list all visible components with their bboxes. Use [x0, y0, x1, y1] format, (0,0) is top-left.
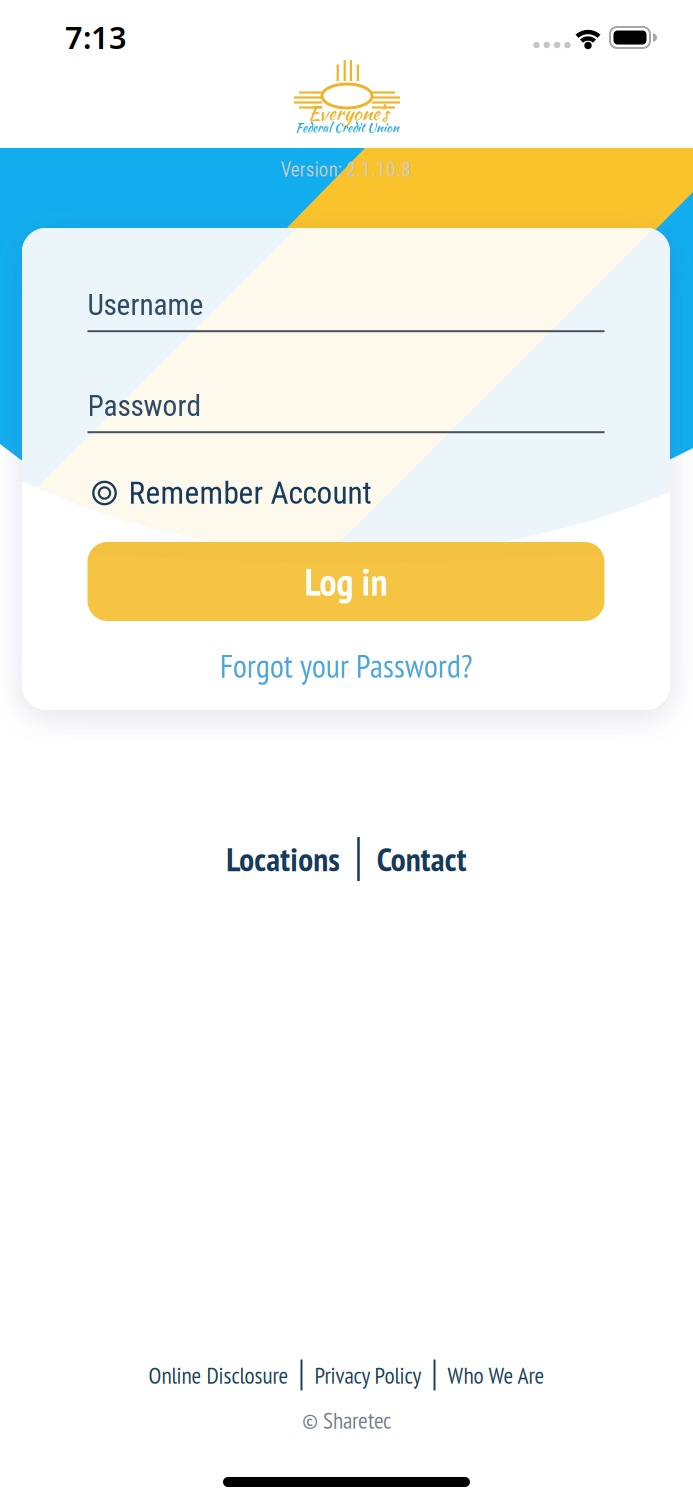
staticText: Version: 2.1.10.8: [280, 159, 411, 181]
button[interactable]: Contact: [377, 837, 467, 880]
staticText: Privacy Policy: [314, 1360, 421, 1390]
button[interactable]: Privacy Policy: [314, 1360, 421, 1390]
staticText: Online Disclosure: [148, 1360, 288, 1390]
button[interactable]: Online Disclosure: [148, 1360, 288, 1390]
button[interactable]: Forgot your Password?: [220, 645, 472, 687]
staticText: Password: [87, 389, 201, 423]
staticText: Everyone's: [308, 99, 389, 127]
button[interactable]: Log in: [87, 542, 604, 621]
staticText: 7:13: [65, 17, 127, 57]
button[interactable]: Locations: [226, 837, 340, 880]
staticText: Username: [87, 288, 203, 322]
button[interactable]: Remember Account: [91, 475, 608, 511]
staticText: Contact: [377, 837, 467, 880]
staticText: Forgot your Password?: [220, 645, 472, 687]
staticText: © Sharetec: [302, 1405, 391, 1435]
staticText: Remember Account: [128, 475, 371, 511]
staticText: Who We Are: [447, 1360, 544, 1390]
staticText: Log in: [304, 557, 387, 606]
staticText: Federal Credit Union: [295, 118, 399, 137]
button[interactable]: Password: [87, 389, 604, 433]
staticText: Locations: [226, 837, 340, 880]
button[interactable]: Username: [87, 288, 604, 332]
button[interactable]: Who We Are: [447, 1360, 544, 1390]
